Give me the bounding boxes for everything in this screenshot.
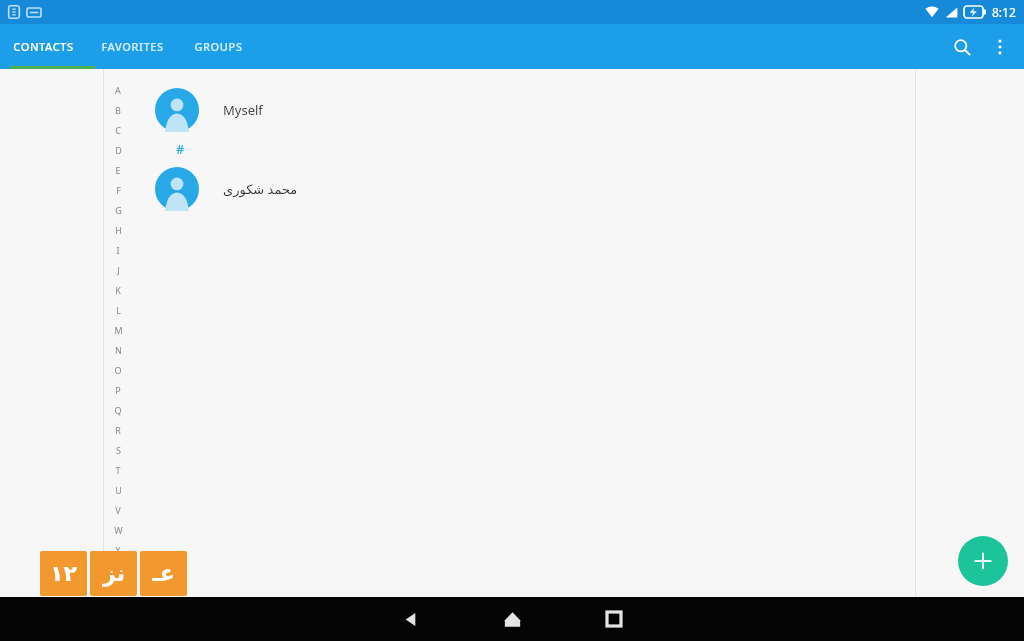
button[interactable]: Myself <box>104 86 915 134</box>
button[interactable]: Back <box>388 597 432 641</box>
button[interactable]: Alphabet index <box>108 80 128 600</box>
staticText: U <box>115 484 122 496</box>
staticText: ١٢ <box>50 561 77 587</box>
staticText: O <box>114 364 122 376</box>
staticText: V <box>115 504 121 516</box>
staticText: S <box>116 444 121 456</box>
button[interactable]: Watermark <box>90 551 137 596</box>
staticText: P <box>115 384 121 396</box>
button[interactable]: More options <box>982 29 1018 65</box>
staticText: K <box>115 284 121 296</box>
staticText: B <box>115 104 121 116</box>
staticText: عـ <box>152 561 175 587</box>
staticText: A <box>115 84 121 96</box>
staticText: W <box>114 524 123 536</box>
button[interactable]: # <box>160 137 200 161</box>
button[interactable]: GROUPS <box>178 24 258 69</box>
staticText: 8:12 <box>992 4 1016 20</box>
staticText: Q <box>114 404 122 416</box>
button[interactable]: FAVORITES <box>86 24 178 69</box>
staticText: L <box>116 304 121 316</box>
button[interactable]: Search <box>942 27 982 67</box>
staticText: محمد شکوری <box>223 180 298 198</box>
staticText: T <box>115 464 121 476</box>
staticText: Y <box>115 564 121 576</box>
button[interactable]: Home <box>490 597 534 641</box>
staticText: نز <box>103 561 125 587</box>
staticText: M <box>114 324 123 336</box>
staticText: CONTACTS <box>13 39 74 54</box>
staticText: X <box>115 544 121 556</box>
button[interactable]: Recent apps <box>592 597 636 641</box>
staticText: J <box>117 264 120 276</box>
staticText: I <box>116 244 120 256</box>
staticText: # <box>176 140 185 158</box>
staticText: F <box>116 184 121 196</box>
button[interactable]: محمد شکوری <box>104 165 915 213</box>
staticText: E <box>115 164 121 176</box>
button[interactable]: CONTACTS <box>0 24 86 69</box>
staticText: FAVORITES <box>101 39 164 54</box>
staticText: C <box>115 124 121 136</box>
staticText: Myself <box>223 101 263 119</box>
staticText: G <box>115 204 122 216</box>
button[interactable]: Watermark <box>140 551 187 596</box>
staticText: H <box>115 224 122 236</box>
button[interactable]: Watermark <box>40 551 87 596</box>
staticText: D <box>115 144 122 156</box>
staticText: N <box>115 344 122 356</box>
staticText: R <box>115 424 121 436</box>
staticText: GROUPS <box>194 39 243 54</box>
button[interactable]: Add contact <box>958 536 1008 586</box>
